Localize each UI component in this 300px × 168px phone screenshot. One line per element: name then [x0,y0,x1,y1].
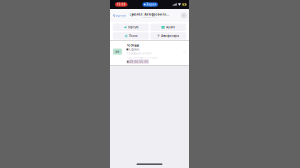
staticText: Сумейбл: Автофрейм по... [129,13,169,16]
button[interactable]: Вернуть [113,24,149,31]
staticText: Вернуть [128,25,138,29]
staticText: напоминаем о платеже [126,56,157,59]
staticText: Поиск [129,34,137,38]
staticText: Уважаемый клиент, [126,52,152,55]
button[interactable]: Автофильтры [150,32,186,40]
staticText: яндекс-почта 16:04 [142,16,157,18]
staticText: Вернуть [115,14,125,17]
staticText: Экран [146,3,156,6]
button[interactable]: ав [110,41,189,66]
staticText: Автофильтры [161,34,179,38]
staticText: 10:04 [117,3,126,6]
staticText: Сервис [129,48,139,51]
button[interactable]: Вернуть [110,9,132,22]
staticText: 28 44 55 33 [129,60,148,63]
staticText: ··· [183,49,186,54]
button[interactable]: Поиск [113,32,149,40]
staticText: Архив [166,25,175,29]
button[interactable]: Профиль [177,9,189,22]
button[interactable]: Архив [150,24,186,31]
staticText: ав [115,50,119,53]
staticText: Честнуша [126,44,139,47]
